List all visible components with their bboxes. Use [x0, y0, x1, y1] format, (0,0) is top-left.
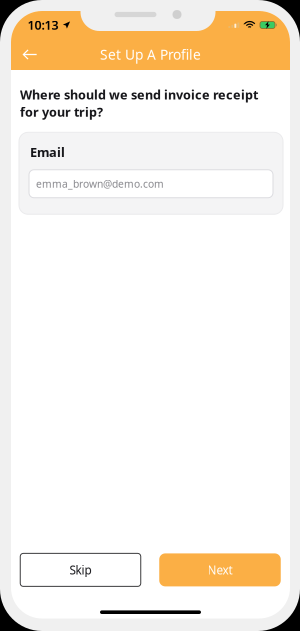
staticText: Next	[207, 562, 232, 578]
staticText: Skip	[69, 562, 91, 578]
staticText: Where should we send invoice receipt for…	[20, 86, 258, 120]
button[interactable]: Skip	[20, 553, 141, 586]
staticText: Set Up A Profile	[100, 45, 201, 64]
button[interactable]: Back	[11, 39, 49, 70]
button[interactable]: Next	[159, 553, 281, 586]
staticText: emma_brown@demo.com	[36, 177, 164, 191]
staticText: Email	[30, 143, 65, 161]
staticText: 10:13	[27, 17, 58, 33]
